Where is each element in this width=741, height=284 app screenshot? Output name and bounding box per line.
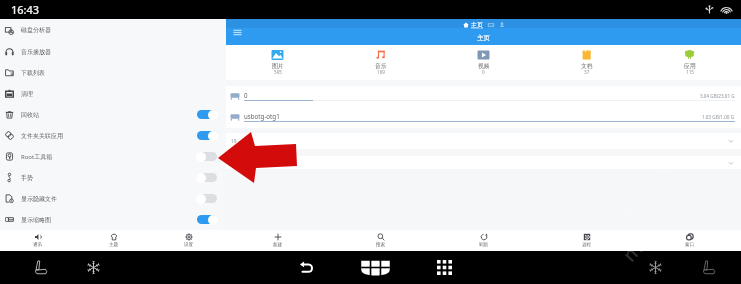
staticText: 图片 (272, 62, 284, 69)
staticText: 远程 (582, 242, 592, 248)
staticText: 磁盘分析器 (21, 26, 51, 34)
staticText: 窗口 (685, 242, 695, 248)
button[interactable]: 音乐 (329, 45, 432, 80)
button[interactable]: Seat heater right (701, 260, 717, 276)
button[interactable]: 手势 (0, 167, 226, 188)
button[interactable]: All apps (437, 260, 452, 275)
button[interactable]: 下载列表 (0, 62, 226, 83)
button[interactable]: 清理 (0, 83, 226, 104)
staticText: 主题 (109, 242, 119, 248)
staticText: 主页 (477, 34, 490, 42)
button[interactable]: 设置 (151, 230, 226, 251)
button[interactable]: 磁盘分析器 (0, 19, 226, 41)
button[interactable]: 远程 (535, 230, 638, 251)
button[interactable] (196, 109, 218, 120)
staticText: 37 (584, 69, 590, 75)
staticText: 显示缩略图 (21, 216, 51, 224)
staticText: 显示隐藏文件 (21, 195, 57, 203)
button[interactable] (196, 193, 218, 204)
button[interactable]: 通讯 (0, 230, 76, 251)
staticText: Root工具箱 (21, 153, 53, 161)
staticText: 清理 (21, 90, 33, 98)
button[interactable]: Menu (226, 19, 248, 45)
button[interactable]: 主题 (76, 230, 151, 251)
button[interactable]: 显示隐藏文件 (0, 188, 226, 209)
button[interactable]: 显示缩略图 (0, 209, 226, 230)
button[interactable]: Home (360, 252, 391, 283)
staticText: 主页 (471, 21, 483, 29)
button[interactable]: Seat heater (33, 260, 49, 276)
staticText: 3.04 GB/23.01 G (700, 93, 735, 99)
staticText: 0 (482, 69, 485, 75)
button[interactable]: 视频 (432, 45, 535, 80)
staticText: 169 (377, 69, 385, 75)
staticText: 文档 (581, 62, 593, 69)
button[interactable]: 应用 (638, 45, 741, 80)
button[interactable] (196, 151, 218, 162)
staticText: 小熊论坛 (603, 163, 679, 243)
button[interactable]: 图片 (226, 45, 329, 80)
button[interactable]: 文档 (535, 45, 638, 80)
staticText: 新建 (273, 242, 283, 248)
staticText: 手势 (21, 174, 33, 182)
staticText: 设置 (184, 242, 194, 248)
button[interactable]: Root工具箱 (0, 146, 226, 167)
button[interactable]: 回收站 (0, 104, 226, 125)
button[interactable]: 0 (226, 86, 741, 106)
staticText: 1.03 GB/1.00 G (702, 114, 735, 120)
button[interactable]: 窗口 (638, 230, 741, 251)
staticText: 19 (231, 138, 237, 145)
staticText: 通讯 (33, 242, 43, 248)
staticText: 115 (686, 69, 694, 75)
staticText: mfunz.com (617, 174, 704, 267)
staticText: 音乐播放器 (21, 48, 51, 56)
staticText: 搜索 (376, 242, 386, 248)
button[interactable] (226, 156, 741, 169)
button[interactable]: Back (298, 260, 314, 276)
button[interactable] (196, 172, 218, 183)
staticText: 回收站 (21, 111, 39, 119)
button[interactable]: 文件夹关联应用 (0, 125, 226, 146)
staticText: 16:43 (11, 2, 40, 17)
staticText: usbotg-otg1 (244, 112, 280, 120)
button[interactable]: Air conditioning right (648, 260, 663, 275)
staticText: 视频 (478, 62, 490, 69)
button[interactable] (196, 130, 218, 141)
staticText: 刷新 (479, 242, 489, 248)
button[interactable]: 音乐播放器 (0, 41, 226, 62)
button[interactable]: 19 (226, 133, 741, 149)
button[interactable]: usbotg-otg1 (226, 106, 741, 128)
staticText: 0 (244, 91, 248, 99)
staticText: 下载列表 (21, 69, 45, 77)
staticText: 音乐 (375, 62, 387, 69)
button[interactable] (196, 214, 218, 225)
staticText: 595 (274, 69, 282, 75)
button[interactable]: Air conditioning (86, 260, 101, 275)
staticText: 应用 (684, 62, 696, 69)
button[interactable]: 新建 (226, 230, 329, 251)
button[interactable]: 搜索 (329, 230, 432, 251)
staticText: 文件夹关联应用 (21, 132, 63, 140)
button[interactable]: 刷新 (432, 230, 535, 251)
